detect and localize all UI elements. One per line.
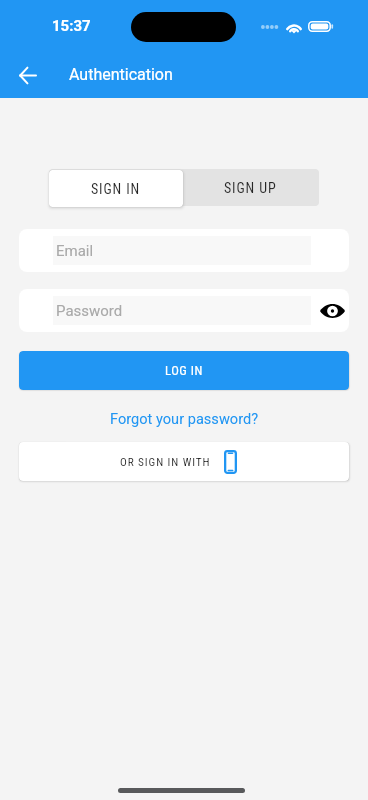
staticText: Email	[56, 242, 94, 260]
button[interactable]: Password	[19, 289, 349, 332]
staticText: SIGN UP	[224, 180, 277, 196]
button[interactable]: Back	[12, 59, 44, 91]
button[interactable]: Forgot your password?	[106, 408, 263, 429]
staticText: Password	[56, 302, 123, 320]
button[interactable]: OR SIGN IN WITH	[19, 442, 349, 481]
staticText: SIGN IN	[91, 181, 141, 197]
staticText: LOG IN	[165, 363, 203, 378]
button[interactable]: Email	[19, 229, 349, 272]
staticText: 15:37	[52, 17, 91, 35]
button[interactable]: Show password	[317, 296, 347, 326]
staticText: Forgot your password?	[110, 410, 259, 427]
staticText: OR SIGN IN WITH	[120, 456, 211, 469]
button[interactable]: SIGN UP	[182, 169, 319, 206]
button[interactable]: LOG IN	[19, 351, 349, 390]
staticText: Authentication	[69, 65, 173, 84]
button[interactable]: SIGN IN	[49, 170, 183, 207]
